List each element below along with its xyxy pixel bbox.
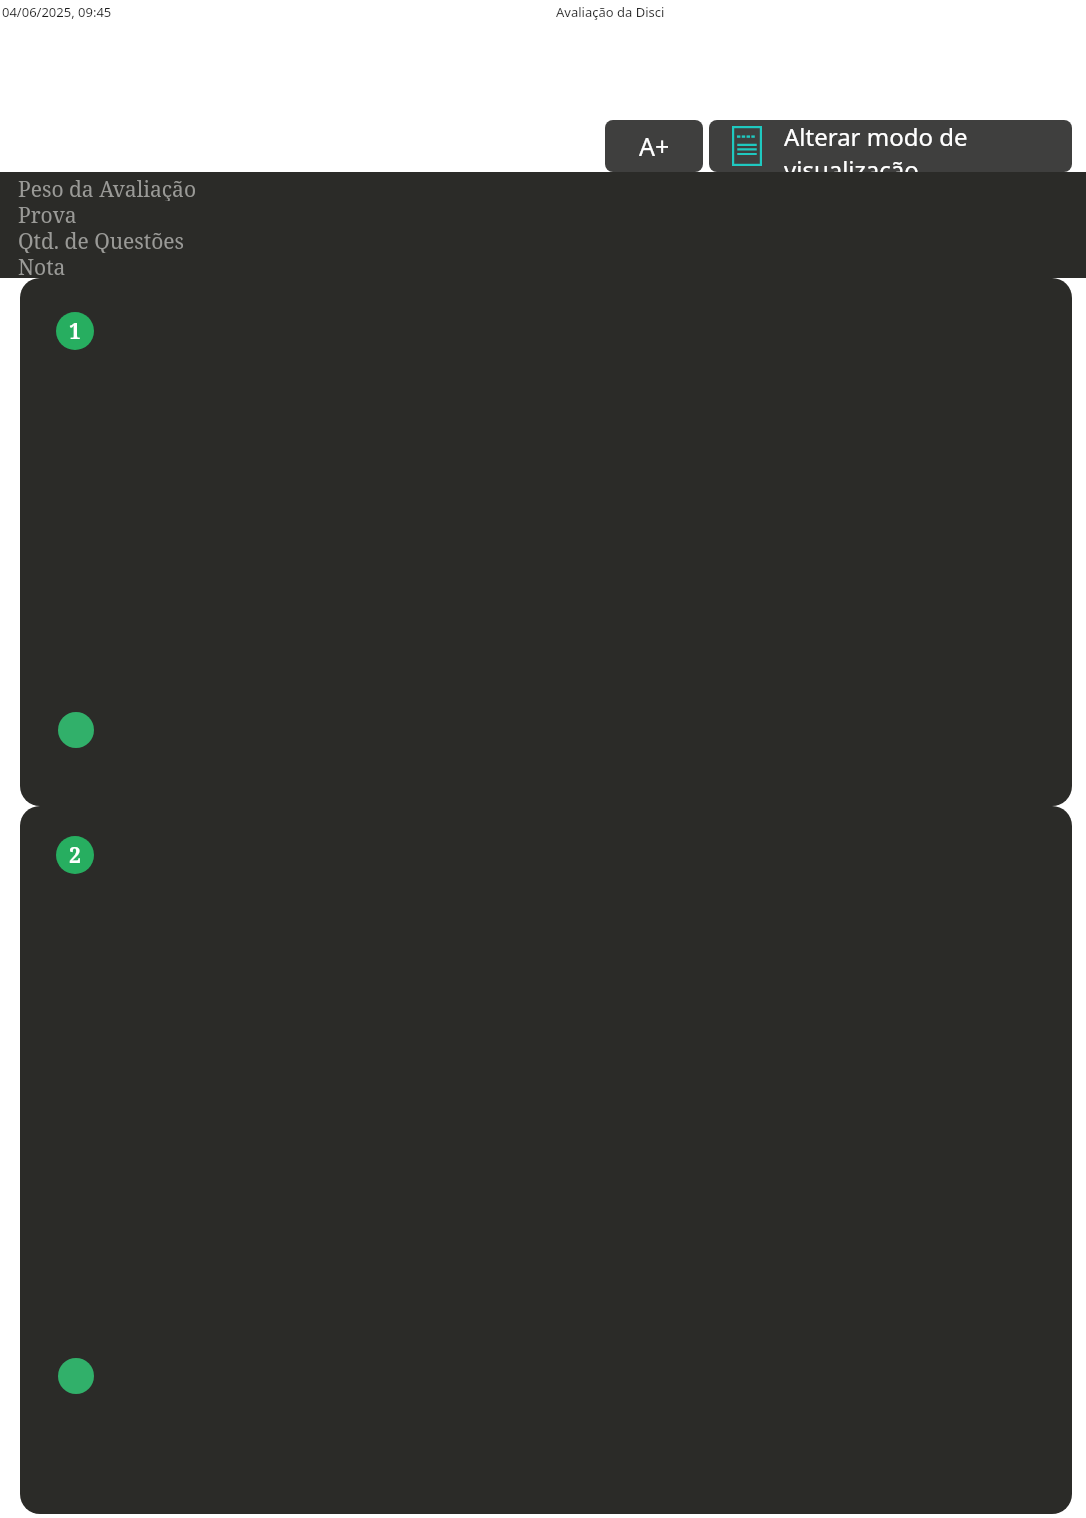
- button[interactable]: A+: [605, 120, 703, 172]
- staticText: Alterar modo de visualização: [784, 120, 1072, 172]
- button[interactable]: Alterar modo de visualização: [709, 120, 1072, 172]
- staticText: 04/06/2025, 09:45: [2, 3, 112, 21]
- staticText: 1: [69, 317, 81, 346]
- staticText: Prova: [18, 201, 77, 227]
- button[interactable]: 1: [20, 278, 1072, 806]
- staticText: 2: [69, 841, 81, 870]
- button[interactable]: 2: [20, 806, 1072, 1514]
- staticText: A+: [639, 129, 670, 163]
- other: Alterar modo de visualização: [732, 126, 762, 166]
- staticText: Qtd. de Questões: [18, 227, 185, 253]
- staticText: Nota: [18, 253, 66, 278]
- staticText: Peso da Avaliação: [18, 175, 196, 201]
- staticText: Avaliação da Disci: [556, 3, 665, 21]
